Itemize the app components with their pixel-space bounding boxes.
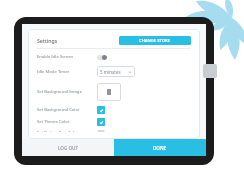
staticText: Set Button Text Color — [37, 130, 79, 132]
staticText: CHANGE STORE — [139, 38, 171, 44]
staticText: DONE — [153, 145, 167, 151]
button[interactable]: Drawer handle — [203, 64, 217, 78]
button[interactable]: 5 minutes — [97, 66, 135, 77]
staticText: Idle Mode Timer — [37, 69, 70, 75]
button[interactable]: Set Background Color — [37, 106, 191, 114]
staticText: Settings — [37, 37, 58, 44]
button[interactable]: DONE — [114, 139, 206, 156]
staticText: Set Background Image — [37, 89, 82, 95]
staticText: LOG OUT — [58, 145, 79, 151]
button[interactable]: Set background image — [97, 83, 121, 101]
button[interactable]: CHANGE STORE — [119, 36, 191, 45]
staticText: Set Background Color — [37, 107, 80, 113]
staticText: 5 minutes — [100, 69, 121, 75]
button[interactable]: Set Button Text Color — [37, 130, 191, 132]
button[interactable]: Set Theme Color — [37, 118, 191, 126]
staticText: Enable Idle Screen — [37, 54, 74, 60]
staticText: Set Theme Color — [37, 119, 70, 125]
button[interactable]: Enable Idle Screen toggle — [97, 55, 107, 60]
button[interactable]: LOG OUT — [22, 139, 114, 156]
